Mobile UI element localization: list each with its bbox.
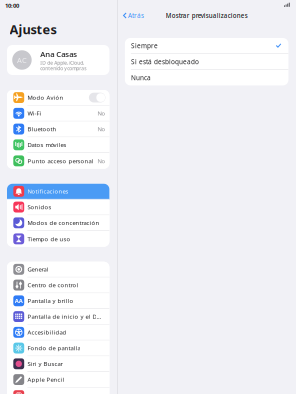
button[interactable]: Siempre [125, 38, 288, 53]
button[interactable]: Pantalla de inicio y el Dock [7, 309, 109, 325]
staticText: Centro de control [27, 281, 78, 289]
staticText: Siempre [131, 41, 158, 50]
staticText: Nunca [131, 73, 151, 82]
staticText: Modo Avión [27, 94, 63, 101]
button[interactable]: Wi-Fi [7, 106, 109, 122]
staticText: Notificaciones [27, 187, 68, 195]
staticText: Pantalla y brillo [27, 297, 73, 305]
button[interactable]: Fondo de pantalla [7, 340, 109, 356]
button[interactable]: Modos de concentración [7, 215, 109, 231]
button[interactable]: Sonidos [7, 199, 109, 215]
staticText: No [97, 109, 105, 117]
button[interactable]: Accesibilidad [7, 325, 109, 341]
staticText: Wi-Fi [27, 109, 41, 117]
button[interactable]: Bluetooth [7, 121, 109, 137]
button[interactable]: Apple Pencil [7, 372, 109, 388]
button[interactable]: Siri y Buscar [7, 356, 109, 372]
button[interactable]: AA [7, 293, 109, 309]
staticText: Tiempo de uso [27, 235, 70, 243]
button[interactable]: AC [7, 45, 109, 75]
staticText: Bluetooth [27, 125, 56, 133]
button[interactable]: Nunca [125, 70, 288, 85]
staticText: No [97, 125, 105, 133]
staticText: Pantalla de inicio y el Dock [27, 313, 104, 320]
staticText: 10:00 [5, 2, 19, 9]
staticText: Ana Casas [40, 49, 77, 59]
staticText: AA [15, 297, 23, 305]
staticText: Modos de concentración [27, 219, 99, 227]
button[interactable]: Atrás [122, 9, 145, 22]
button[interactable]: Modo Avión [7, 90, 109, 106]
staticText: Ajustes [10, 21, 57, 38]
staticText: Datos móviles [27, 141, 66, 149]
staticText: Sonidos [27, 203, 51, 211]
staticText: Si está desbloqueado [131, 57, 199, 66]
button[interactable]: Tiempo de uso [7, 231, 109, 247]
button[interactable]: Touch ID y código [7, 388, 109, 394]
staticText: Fondo de pantalla [27, 344, 80, 352]
button[interactable]: General [7, 262, 109, 278]
staticText: Punto acceso personal [27, 157, 93, 165]
staticText: No [97, 157, 105, 165]
staticText: Accesibilidad [27, 328, 66, 336]
staticText: Siri y Buscar [27, 360, 62, 368]
button[interactable]: Punto acceso personal [7, 153, 109, 169]
staticText: ID de Apple, iCloud, [40, 60, 84, 66]
button[interactable]: Centro de control [7, 277, 109, 293]
button[interactable]: Notificaciones [7, 184, 109, 200]
staticText: General [27, 265, 48, 273]
button[interactable]: Datos móviles [7, 137, 109, 153]
staticText: Apple Pencil [27, 376, 64, 383]
staticText: Atrás [128, 11, 144, 20]
button[interactable]: Si está desbloqueado [125, 54, 288, 69]
staticText: contenido y compras [40, 65, 86, 71]
staticText: Mostrar previsualizaciones [166, 11, 248, 19]
staticText: AC [17, 55, 27, 65]
